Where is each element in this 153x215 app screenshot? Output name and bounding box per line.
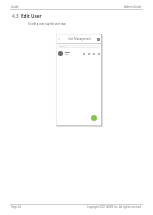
staticText: 4.3 [12,13,19,19]
staticText: Page 24 [11,205,21,209]
staticText: Guide [11,5,19,9]
staticText: Copyright 2021 ACME Inc. All rights rese… [87,205,142,209]
staticText: To edit a user, tap the user row. [28,22,66,26]
button[interactable]: Back [58,38,60,40]
staticText: User Management [68,37,91,41]
button[interactable]: Add user [91,115,97,121]
staticText: Admin Guide [124,5,142,9]
staticText: Edit User [21,13,42,19]
button[interactable]: Search [58,45,100,48]
staticText: Search [59,45,66,48]
button[interactable]: Action [58,49,100,58]
